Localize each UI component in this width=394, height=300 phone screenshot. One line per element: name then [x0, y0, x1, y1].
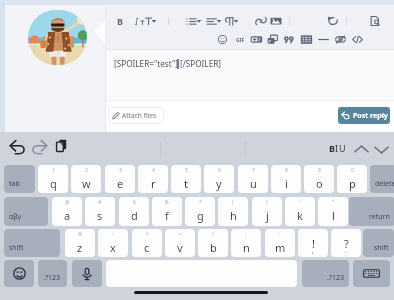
- button[interactable]: 0: [337, 165, 367, 193]
- staticText: shift: [9, 243, 24, 253]
- staticText: $: [133, 199, 136, 206]
- staticText: I: [135, 15, 138, 27]
- staticText: x: [110, 240, 116, 255]
- button[interactable]: Insert image: [270, 15, 282, 27]
- staticText: o: [316, 176, 323, 191]
- button[interactable]: Font size: [140, 15, 153, 28]
- button[interactable]: ": [318, 197, 348, 226]
- button[interactable]: 8: [271, 165, 301, 193]
- staticText: αβγ: [9, 212, 22, 222]
- button[interactable]: Attach files: [108, 107, 164, 124]
- button[interactable]: Paragraph format: [224, 16, 235, 27]
- staticText: GIF: [236, 37, 245, 44]
- button[interactable]: Insert GIF: [234, 34, 246, 46]
- button[interactable]: αβγ: [4, 197, 48, 226]
- button[interactable]: Emoji: [4, 260, 34, 287]
- button[interactable]: Bold: [114, 15, 126, 27]
- staticText: I: [335, 142, 339, 154]
- button[interactable]: 2: [71, 165, 101, 193]
- staticText: p: [349, 176, 356, 191]
- button[interactable]: Text align: [206, 16, 217, 27]
- button[interactable]: shift: [4, 229, 60, 257]
- button[interactable]: Horizontal rule: [318, 34, 329, 45]
- staticText: 3: [119, 167, 122, 174]
- staticText: ,: [312, 246, 314, 256]
- button[interactable]: Paste: [55, 139, 68, 154]
- button[interactable]: 9: [304, 165, 334, 193]
- button[interactable]: %: [65, 229, 95, 257]
- button[interactable]: #: [85, 197, 115, 226]
- button[interactable]: &: [152, 197, 182, 226]
- button[interactable]: *: [185, 197, 215, 226]
- button[interactable]: .?123: [38, 260, 67, 287]
- button[interactable]: tab: [4, 165, 35, 193]
- button[interactable]: Italic: [130, 15, 142, 27]
- button[interactable]: Quote: [284, 35, 294, 45]
- button[interactable]: ): [252, 197, 282, 226]
- button[interactable]: 7: [238, 165, 268, 193]
- staticText: j: [266, 208, 269, 223]
- staticText: 8: [285, 167, 288, 174]
- button[interactable]: return: [349, 197, 394, 226]
- button[interactable]: Profile avatar: [28, 10, 87, 65]
- staticText: n: [243, 240, 250, 255]
- button[interactable]: List: [186, 16, 197, 27]
- button[interactable]: 5: [171, 165, 201, 193]
- button[interactable]: Voice input: [72, 260, 102, 287]
- button[interactable]: B: [329, 142, 346, 154]
- button[interactable]: 4: [138, 165, 168, 193]
- button[interactable]: :: [265, 229, 295, 257]
- button[interactable]: $: [119, 197, 149, 226]
- staticText: g: [197, 208, 204, 223]
- button[interactable]: Code: [352, 34, 363, 45]
- staticText: tab: [9, 179, 20, 189]
- staticText: %: [78, 231, 83, 238]
- button[interactable]: ;: [231, 229, 261, 257]
- button[interactable]: Undo: [327, 15, 339, 27]
- button[interactable]: ?: [331, 229, 361, 257]
- staticText: (: [232, 199, 234, 206]
- button[interactable]: Emoji: [218, 35, 227, 44]
- button[interactable]: 6: [204, 165, 234, 193]
- button[interactable]: Spoiler: [335, 34, 346, 45]
- staticText: Post reply: [353, 111, 388, 121]
- staticText: t: [184, 176, 188, 191]
- staticText: k: [297, 208, 303, 223]
- button[interactable]: Insert video: [251, 34, 262, 45]
- button[interactable]: Redo: [31, 139, 48, 155]
- button[interactable]: shift: [363, 229, 394, 257]
- button[interactable]: !: [298, 229, 328, 257]
- button[interactable]: =: [165, 229, 195, 257]
- button[interactable]: Hide keyboard: [353, 260, 390, 287]
- button[interactable]: +: [132, 229, 162, 257]
- button[interactable]: /: [198, 229, 228, 257]
- button[interactable]: Next field: [373, 141, 390, 158]
- button[interactable]: @: [52, 197, 82, 226]
- button[interactable]: Link: [255, 15, 267, 27]
- staticText: delete: [375, 179, 394, 189]
- button[interactable]: Previous field: [353, 141, 370, 158]
- button[interactable]: (: [218, 197, 248, 226]
- button[interactable]: ': [285, 197, 315, 226]
- button[interactable]: delete: [370, 165, 394, 193]
- button[interactable]: -: [98, 229, 128, 257]
- button[interactable]: 1: [38, 165, 68, 193]
- staticText: @: [65, 199, 70, 206]
- button[interactable]: 3: [105, 165, 135, 193]
- button[interactable]: Insert table: [301, 34, 312, 45]
- button[interactable]: Post reply: [338, 107, 390, 124]
- staticText: 4: [152, 167, 155, 174]
- button[interactable]: Insert media: [267, 34, 278, 45]
- staticText: B: [117, 15, 123, 27]
- staticText: i: [285, 176, 288, 191]
- staticText: e: [117, 176, 124, 191]
- staticText: .?123: [43, 273, 60, 283]
- staticText: d: [131, 208, 138, 223]
- staticText: B: [329, 142, 335, 154]
- staticText: z: [77, 240, 83, 255]
- staticText: &: [165, 199, 169, 206]
- button[interactable]: Undo: [9, 139, 26, 155]
- button[interactable]: .?123: [302, 260, 349, 287]
- button[interactable]: Drafts: [369, 15, 381, 27]
